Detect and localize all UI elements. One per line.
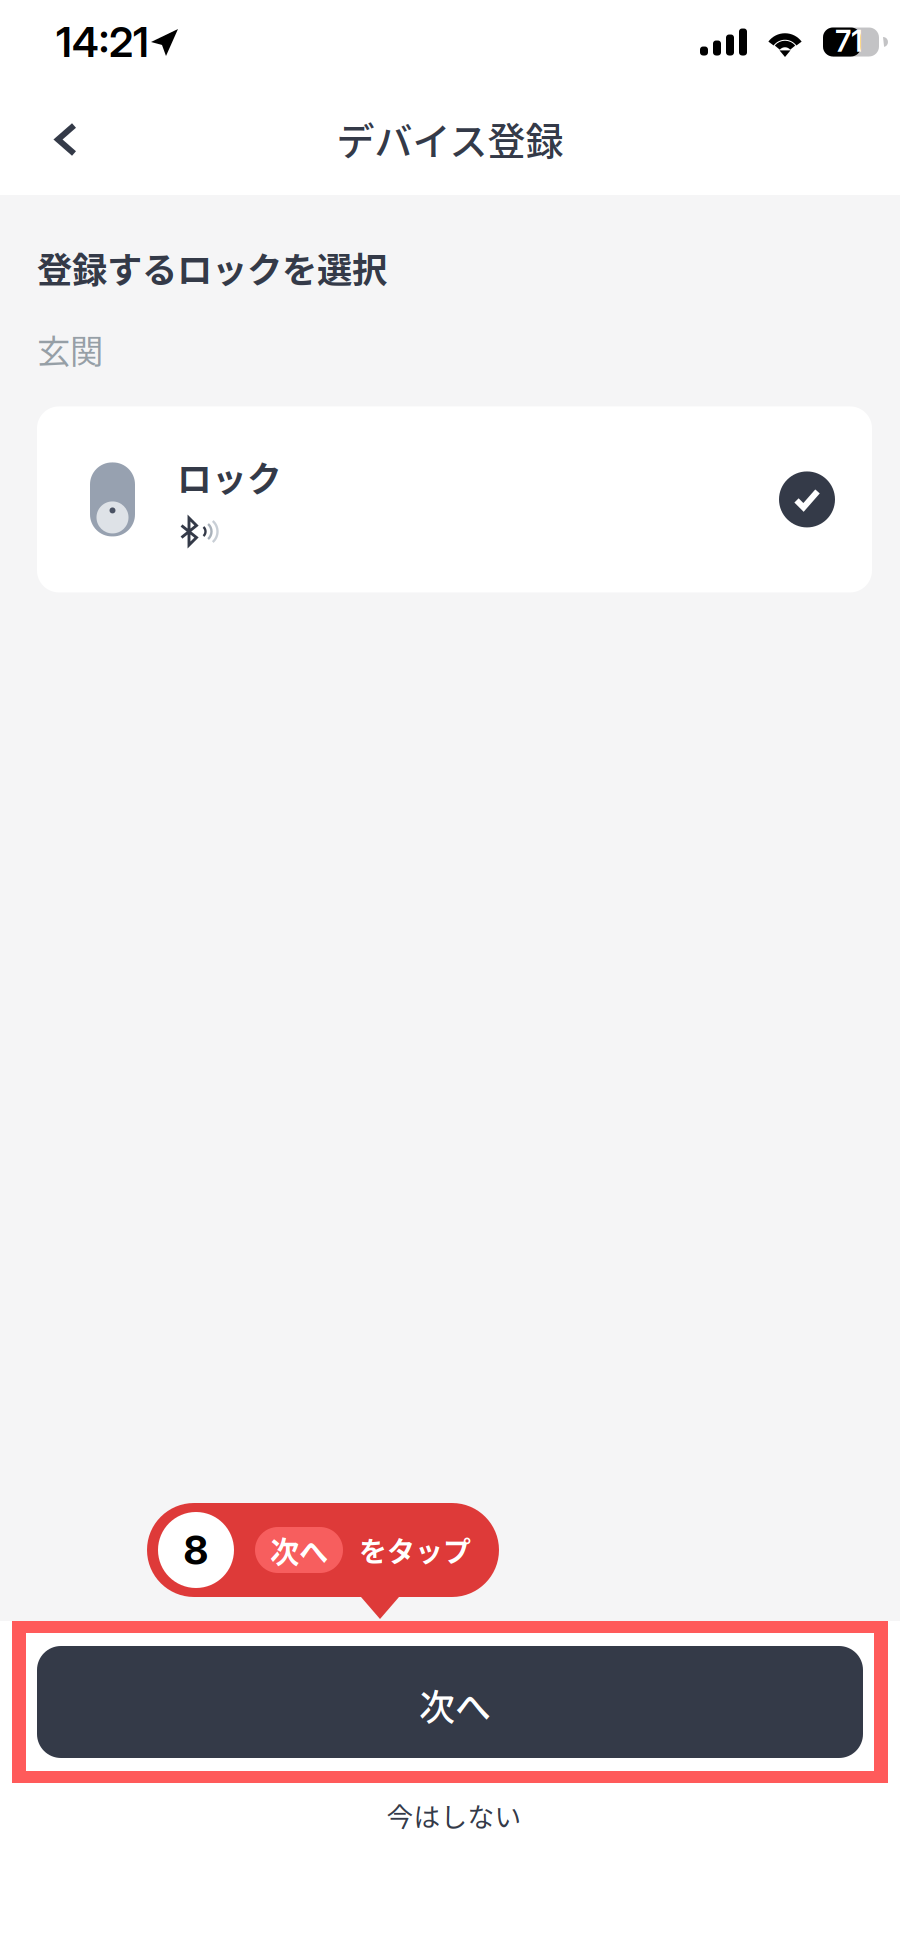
staticText: 登録するロックを選択 [37,242,387,293]
button[interactable]: 戻る [24,97,108,181]
staticText: 8 [183,1526,208,1574]
staticText: をタップ [359,1530,471,1570]
button[interactable]: ロック [37,406,872,592]
staticText: 次へ [419,1679,491,1731]
button[interactable]: 次へ [0,1621,900,1783]
staticText: ロック [177,452,282,502]
staticText: デバイス登録 [336,111,563,166]
button[interactable]: 今はしない [0,1787,900,1843]
staticText: 71 [835,23,863,59]
staticText: 玄関 [37,325,103,373]
staticText: 次へ [270,1529,328,1571]
staticText: 今はしない [386,1796,521,1834]
staticText: 14:21 [56,17,149,67]
